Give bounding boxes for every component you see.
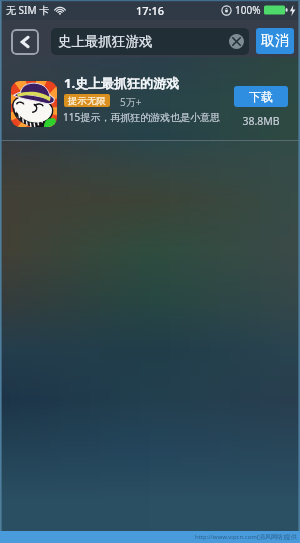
staticText: 17:16 (136, 3, 165, 18)
staticText: 下载 (249, 89, 273, 104)
staticText: 取消 (261, 32, 289, 50)
button[interactable]: 史上最抓狂游戏 (51, 28, 249, 55)
button[interactable]: 下载 (234, 86, 288, 107)
staticText: 115提示，再抓狂的游戏也是小意思 (63, 110, 221, 124)
staticText: 史上最抓狂游戏 (58, 33, 153, 50)
staticText: 提示无限 (68, 95, 106, 107)
staticText: 无 SIM 卡 (6, 3, 50, 17)
button[interactable]: 取消 (256, 28, 294, 54)
button[interactable]: Clear (229, 34, 244, 49)
staticText: 38.8MB (234, 114, 288, 128)
staticText: 100% (235, 3, 261, 17)
button[interactable]: Back (11, 29, 39, 55)
staticText: 5万+ (120, 95, 142, 109)
staticText: http://www.vipcn.com[清风网络]提供 (195, 533, 297, 541)
button[interactable]: 1.史上最抓狂的游戏 (0, 57, 300, 141)
staticText: 1.史上最抓狂的游戏 (64, 74, 180, 92)
